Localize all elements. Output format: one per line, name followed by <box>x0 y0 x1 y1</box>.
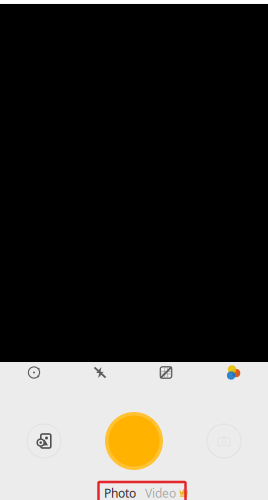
staticText: Video <box>145 485 176 500</box>
button[interactable]: Gallery <box>18 415 70 467</box>
button[interactable]: Flash off <box>77 357 123 387</box>
button[interactable]: Video <box>140 482 194 500</box>
button[interactable]: Take photo <box>98 405 170 477</box>
button[interactable]: Photo <box>97 482 143 500</box>
button[interactable]: Filters <box>210 357 256 387</box>
button[interactable]: Grid off <box>143 357 189 387</box>
button[interactable]: Self-timer <box>11 357 57 387</box>
staticText: Photo <box>104 485 136 500</box>
